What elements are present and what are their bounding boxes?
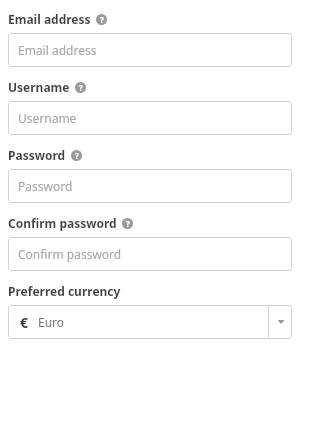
button[interactable]: Help about Confirm password (122, 218, 133, 229)
button[interactable]: Help about Email address (96, 14, 107, 25)
staticText: Email address (8, 11, 91, 27)
staticText: € (20, 313, 29, 332)
button[interactable]: Help about Username (75, 82, 86, 93)
staticText: Password (8, 147, 66, 163)
button[interactable]: Email address (8, 33, 292, 67)
staticText: ? (126, 218, 130, 229)
button[interactable]: Open currency list (269, 305, 292, 339)
staticText: Username (8, 79, 70, 95)
staticText: ? (79, 82, 83, 93)
staticText: ? (75, 150, 79, 161)
staticText: Preferred currency (8, 283, 121, 299)
staticText: Password (18, 178, 73, 194)
button[interactable]: € (8, 305, 292, 339)
button[interactable]: Username (8, 101, 292, 135)
staticText: Email address (18, 42, 97, 58)
staticText: ? (100, 14, 104, 25)
staticText: Username (18, 110, 77, 126)
staticText: Confirm password (8, 215, 117, 231)
button[interactable]: Help about Password (71, 150, 82, 161)
button[interactable]: Password (8, 169, 292, 203)
staticText: Confirm password (18, 246, 122, 262)
button[interactable]: Confirm password (8, 237, 292, 271)
staticText: Euro (38, 314, 65, 330)
